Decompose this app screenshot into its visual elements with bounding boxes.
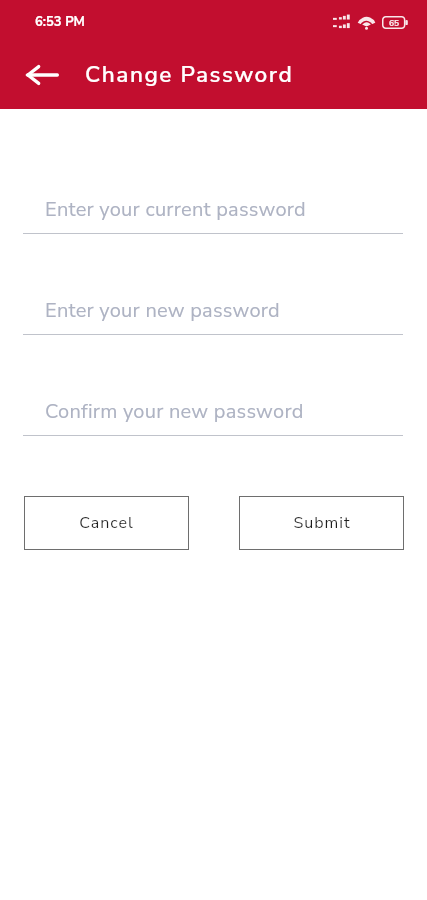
staticText: 6:53 PM — [35, 13, 85, 31]
staticText: Confirm your new password — [45, 398, 304, 425]
staticText: Enter your current password — [45, 196, 306, 223]
staticText: Cancel — [79, 512, 134, 534]
button[interactable]: Back — [18, 51, 66, 99]
button[interactable]: Cancel — [24, 496, 189, 550]
staticText: Change Password — [85, 59, 294, 90]
button[interactable]: Enter your current password — [0, 195, 427, 234]
button[interactable]: Confirm your new password — [0, 397, 427, 436]
staticText: Submit — [293, 512, 351, 534]
button[interactable]: Enter your new password — [0, 296, 427, 335]
staticText: 65 — [389, 17, 400, 29]
button[interactable]: Submit — [239, 496, 404, 550]
staticText: Enter your new password — [45, 297, 280, 324]
